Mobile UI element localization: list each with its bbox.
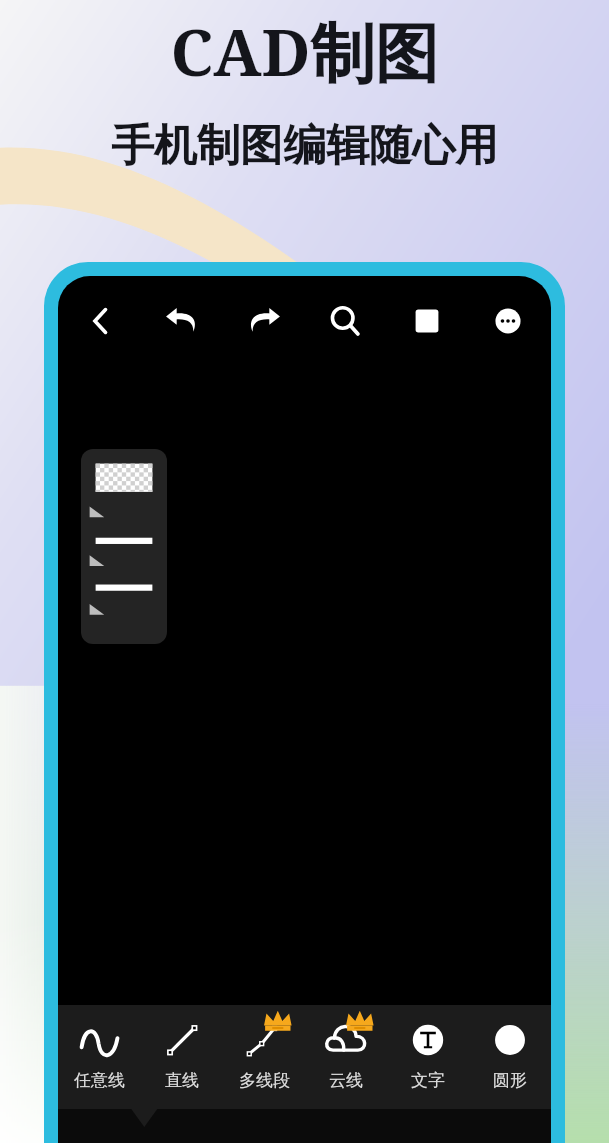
button[interactable]: 任意线	[58, 1005, 141, 1109]
button[interactable]: 多线段	[223, 1005, 305, 1109]
staticText: 文字	[411, 1070, 445, 1091]
button[interactable]: Stop	[400, 294, 454, 348]
staticText: 多线段	[239, 1070, 290, 1091]
staticText: 云线	[329, 1070, 363, 1091]
button[interactable]: 圆形	[469, 1005, 551, 1109]
button[interactable]: More options	[481, 294, 535, 348]
button[interactable]: 文字	[387, 1005, 469, 1109]
button[interactable]: Redo	[237, 294, 291, 348]
staticText: 圆形	[493, 1070, 527, 1091]
staticText: 任意线	[74, 1070, 125, 1091]
button[interactable]: 云线	[305, 1005, 387, 1109]
staticText: CAD制图	[170, 8, 439, 95]
button[interactable]: Search	[318, 294, 372, 348]
button[interactable]: Back	[74, 294, 128, 348]
button[interactable]: 直线	[141, 1005, 223, 1109]
staticText: 直线	[165, 1070, 199, 1091]
staticText: 手机制图编辑随心用	[111, 119, 498, 173]
button[interactable]: Layers panel	[81, 449, 167, 644]
button[interactable]: Undo	[155, 294, 209, 348]
